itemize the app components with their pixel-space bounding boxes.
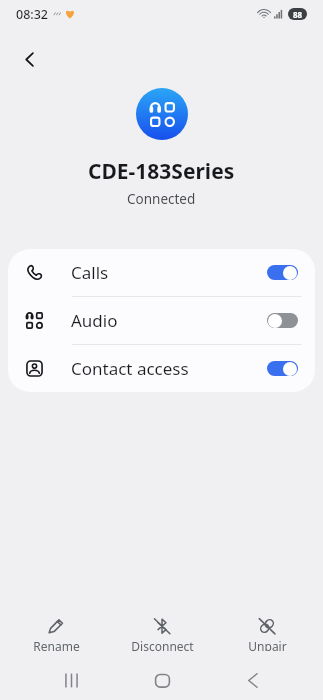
button[interactable]: Calls bbox=[8, 249, 315, 296]
staticText: Calls bbox=[71, 261, 109, 284]
staticText: CDE-183Series bbox=[88, 157, 235, 186]
button[interactable]: Recents bbox=[51, 660, 91, 700]
button[interactable]: Contact access bbox=[8, 345, 315, 392]
staticText: Disconnect bbox=[131, 638, 194, 651]
staticText: Contact access bbox=[71, 357, 189, 380]
staticText: 88 bbox=[293, 9, 303, 20]
button[interactable]: Back bbox=[232, 660, 272, 700]
button[interactable]: Rename bbox=[6, 613, 106, 655]
staticText: Rename bbox=[33, 638, 80, 651]
button[interactable]: Unpair bbox=[217, 613, 317, 655]
button[interactable]: Audio bbox=[8, 297, 315, 344]
staticText: 08:32 bbox=[16, 6, 49, 23]
staticText: Connected bbox=[127, 190, 196, 208]
staticText: Unpair bbox=[248, 638, 287, 651]
button[interactable]: Toggle on bbox=[267, 265, 298, 280]
button[interactable]: Toggle off bbox=[267, 313, 298, 328]
staticText: Audio bbox=[71, 309, 118, 332]
button[interactable]: Back bbox=[11, 46, 47, 72]
button[interactable]: Toggle on bbox=[267, 361, 298, 376]
button[interactable]: Home bbox=[142, 660, 182, 700]
button[interactable]: Disconnect bbox=[112, 613, 212, 655]
